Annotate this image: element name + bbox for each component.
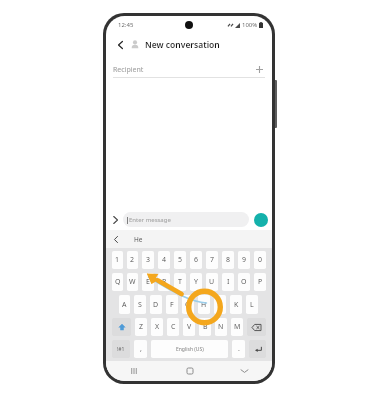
staticText: 9 (242, 255, 247, 265)
staticText: C (171, 322, 176, 332)
button[interactable]: Shift (112, 318, 131, 336)
button[interactable]: 4 (158, 251, 170, 269)
button[interactable]: . (232, 340, 245, 358)
button[interactable]: U (206, 273, 218, 291)
button[interactable]: W (127, 273, 138, 291)
button[interactable]: B (199, 318, 211, 336)
button[interactable]: E (142, 273, 154, 291)
staticText: S (138, 300, 142, 310)
button[interactable]: V (183, 318, 195, 336)
staticText: 5 (178, 255, 183, 265)
staticText: M (234, 322, 241, 332)
staticText: B (203, 322, 208, 332)
button[interactable]: 2 (127, 251, 138, 269)
button[interactable]: Show more options (109, 213, 122, 226)
staticText: W (129, 277, 136, 287)
button[interactable]: 0 (254, 251, 266, 269)
button[interactable]: English (US) (151, 340, 228, 358)
staticText: Recipient (113, 65, 144, 75)
staticText: E (146, 277, 150, 287)
staticText: 0 (258, 255, 263, 265)
staticText: 4 (162, 255, 167, 265)
staticText: G (185, 300, 191, 310)
staticText: V (187, 322, 192, 332)
staticText: , (140, 344, 142, 354)
button[interactable]: X (151, 318, 163, 336)
button[interactable]: L (246, 295, 258, 314)
button[interactable]: R (158, 273, 170, 291)
staticText: 3 (146, 255, 151, 265)
button[interactable]: I (222, 273, 234, 291)
staticText: Enter message (129, 216, 171, 224)
staticText: . (238, 344, 240, 354)
button[interactable]: 9 (238, 251, 250, 269)
button[interactable]: Home (162, 361, 217, 381)
button[interactable]: H (198, 295, 210, 314)
staticText: Y (194, 277, 198, 287)
button[interactable]: Add recipient (254, 64, 265, 75)
button[interactable]: Enter (249, 340, 266, 358)
button[interactable]: Z (135, 318, 147, 336)
staticText: 1 (115, 255, 120, 265)
staticText: N (218, 322, 224, 332)
staticText: He (134, 235, 143, 244)
staticText: F (170, 300, 174, 310)
staticText: T (178, 277, 182, 287)
button[interactable]: Enter message (123, 212, 249, 227)
button[interactable]: D (150, 295, 162, 314)
staticText: 100% (242, 21, 258, 29)
button[interactable]: 1 (112, 251, 123, 269)
button[interactable]: J (214, 295, 226, 314)
button[interactable]: Back (113, 38, 127, 52)
staticText: 2 (130, 255, 135, 265)
button[interactable]: G (182, 295, 194, 314)
staticText: 6 (194, 255, 199, 265)
button[interactable]: M (231, 318, 243, 336)
staticText: L (250, 300, 254, 310)
button[interactable]: O (238, 273, 250, 291)
staticText: 7 (210, 255, 215, 265)
button[interactable]: Y (190, 273, 202, 291)
button[interactable]: !#1 (112, 340, 130, 358)
staticText: O (241, 277, 247, 287)
button[interactable]: C (167, 318, 179, 336)
button[interactable]: Previous suggestions (110, 234, 121, 245)
button[interactable]: 3 (142, 251, 154, 269)
staticText: P (258, 277, 263, 287)
button[interactable]: N (215, 318, 227, 336)
staticText: U (209, 277, 215, 287)
button[interactable]: Backspace (247, 318, 266, 336)
staticText: I (227, 277, 230, 287)
staticText: English (US) (176, 346, 204, 353)
button[interactable]: Send (254, 213, 268, 227)
button[interactable]: K (230, 295, 242, 314)
button[interactable]: Q (112, 273, 123, 291)
staticText: H (201, 300, 207, 310)
staticText: Q (115, 277, 121, 287)
button[interactable]: T (174, 273, 186, 291)
staticText: 12:45 (118, 21, 134, 29)
staticText: !#1 (117, 346, 125, 353)
staticText: D (153, 300, 159, 310)
staticText: Z (139, 322, 144, 332)
staticText: R (162, 277, 167, 287)
staticText: A (122, 300, 127, 310)
button[interactable]: S (134, 295, 146, 314)
button[interactable]: 6 (190, 251, 202, 269)
button[interactable]: F (166, 295, 178, 314)
button[interactable]: 7 (206, 251, 218, 269)
staticText: K (234, 300, 239, 310)
button[interactable]: , (134, 340, 147, 358)
staticText: X (155, 322, 160, 332)
button[interactable]: 5 (174, 251, 186, 269)
button[interactable]: Recent apps (106, 361, 162, 381)
button[interactable]: Back (217, 361, 272, 381)
button[interactable]: P (254, 273, 266, 291)
staticText: 8 (226, 255, 231, 265)
button[interactable]: 8 (222, 251, 234, 269)
button[interactable]: A (119, 295, 130, 314)
staticText: New conversation (145, 39, 220, 51)
